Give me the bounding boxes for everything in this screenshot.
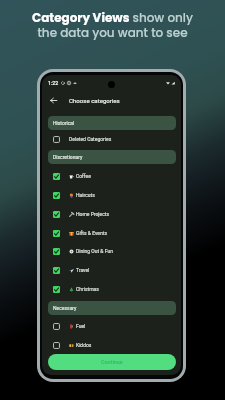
- staticText: Necessary: [53, 305, 77, 311]
- staticText: Gifts & Events: [76, 230, 107, 236]
- staticText: Christmas: [76, 286, 99, 292]
- staticText: Fuel: [76, 323, 86, 329]
- button[interactable]: Discretionary: [48, 150, 176, 164]
- staticText: Deleted Categories: [69, 136, 112, 142]
- button[interactable]: Dining Out & Fun: [42, 242, 181, 260]
- button[interactable]: Haircuts: [42, 186, 181, 204]
- button[interactable]: Gifts & Events: [42, 224, 181, 242]
- button[interactable]: Kiddos: [42, 336, 181, 354]
- staticText: Dining Out & Fun: [76, 248, 113, 254]
- button[interactable]: Christmas: [42, 280, 181, 298]
- button[interactable]: Historical: [48, 116, 176, 130]
- staticText: Discretionary: [53, 154, 83, 160]
- staticText: Category Views show only the data you wa…: [0, 9, 225, 42]
- button[interactable]: Continue: [48, 354, 176, 370]
- button[interactable]: Back: [44, 91, 62, 110]
- staticText: Travel: [76, 267, 90, 273]
- staticText: Haircuts: [76, 192, 95, 198]
- staticText: Kiddos: [76, 342, 92, 348]
- staticText: Coffee: [76, 173, 91, 179]
- button[interactable]: Deleted Categories: [42, 130, 181, 148]
- staticText: Historical: [53, 120, 75, 126]
- button[interactable]: Travel: [42, 261, 181, 279]
- button[interactable]: Necessary: [48, 301, 176, 315]
- staticText: 1:22: [48, 80, 59, 86]
- staticText: Choose categories: [69, 97, 120, 104]
- staticText: Continue: [101, 359, 123, 365]
- staticText: Home Projects: [76, 211, 110, 217]
- button[interactable]: Coffee: [42, 167, 181, 185]
- button[interactable]: Fuel: [42, 317, 181, 335]
- button[interactable]: Home Projects: [42, 205, 181, 223]
